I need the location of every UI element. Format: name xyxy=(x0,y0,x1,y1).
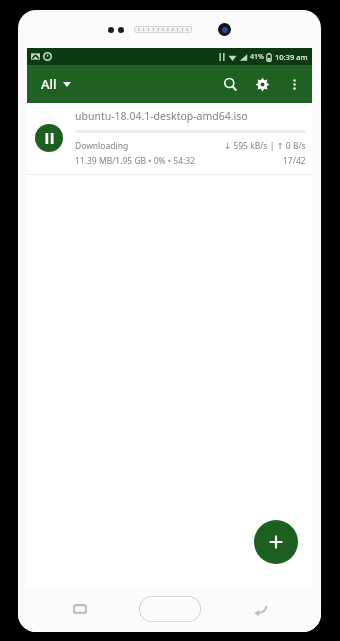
staticText: All xyxy=(41,75,57,93)
button[interactable]: Back xyxy=(245,594,275,624)
button[interactable]: Pause download xyxy=(27,103,312,174)
button[interactable]: Home xyxy=(139,596,201,622)
staticText: ↓ 595 kB/s | ↑ 0 B/s xyxy=(224,140,306,152)
staticText: 41% xyxy=(250,52,264,62)
staticText: 10:39 am xyxy=(275,52,308,62)
button[interactable]: Recents xyxy=(65,594,95,624)
button[interactable]: Pause download xyxy=(35,124,63,152)
button[interactable]: Add download xyxy=(254,520,298,564)
staticText: 17/42 xyxy=(283,155,306,167)
staticText: ubuntu-18.04.1-desktop-amd64.iso xyxy=(75,109,248,123)
button[interactable]: More options xyxy=(278,65,310,103)
staticText: Downloading xyxy=(75,140,129,152)
button[interactable]: Search xyxy=(214,65,246,103)
staticText: 11.39 MB/1.95 GB • 0% • 54:32 xyxy=(75,155,196,167)
button[interactable]: All xyxy=(35,70,77,98)
button[interactable]: Settings xyxy=(246,65,278,103)
